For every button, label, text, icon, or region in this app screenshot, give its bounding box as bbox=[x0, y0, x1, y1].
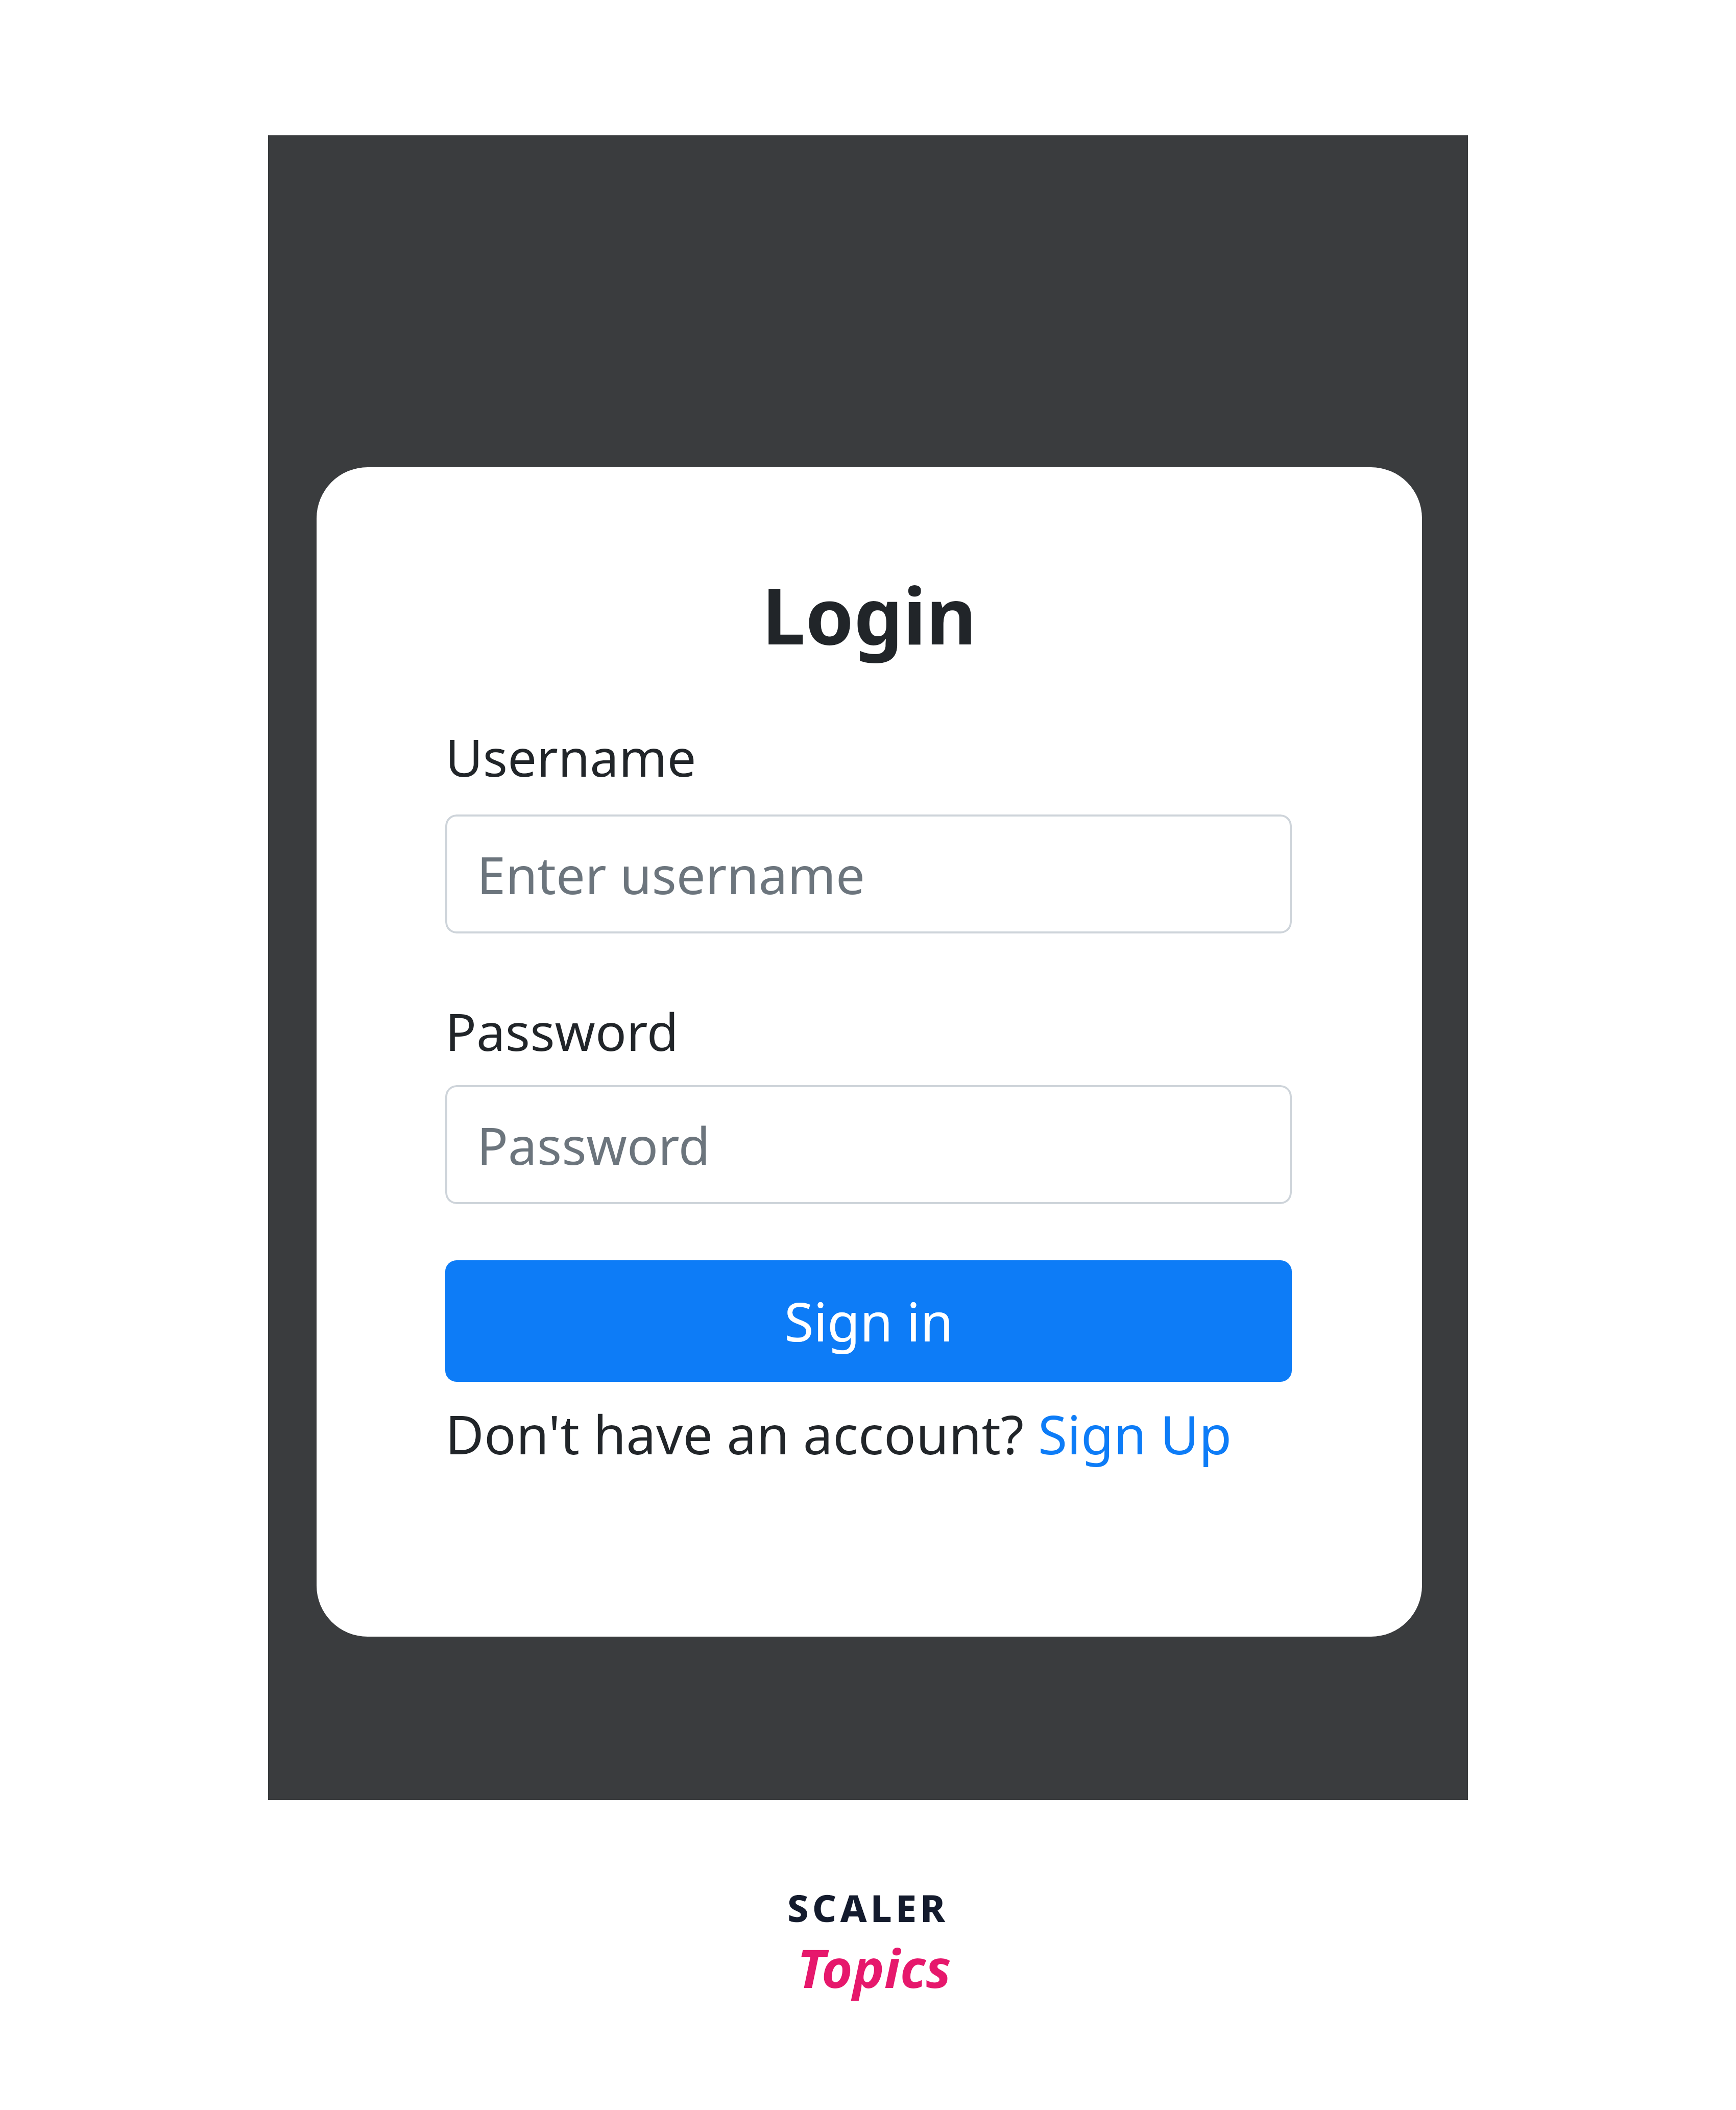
staticText: Password bbox=[445, 996, 679, 1066]
staticText: Enter username bbox=[477, 839, 865, 909]
button[interactable]: Sign in bbox=[445, 1260, 1292, 1382]
staticText: Don't have an account? bbox=[445, 1398, 1038, 1470]
button[interactable]: Sign Up bbox=[1038, 1398, 1232, 1470]
staticText: Sign Up bbox=[1038, 1398, 1232, 1470]
button[interactable]: Enter username bbox=[445, 814, 1292, 933]
staticText: Password bbox=[477, 1110, 710, 1180]
staticText: Sign in bbox=[784, 1285, 953, 1357]
staticText: Login bbox=[762, 562, 977, 667]
staticText: Username bbox=[445, 722, 696, 792]
staticText: SCALER bbox=[787, 1882, 949, 1933]
staticText: Topics bbox=[797, 1931, 951, 2004]
button[interactable]: Password bbox=[445, 1085, 1292, 1204]
